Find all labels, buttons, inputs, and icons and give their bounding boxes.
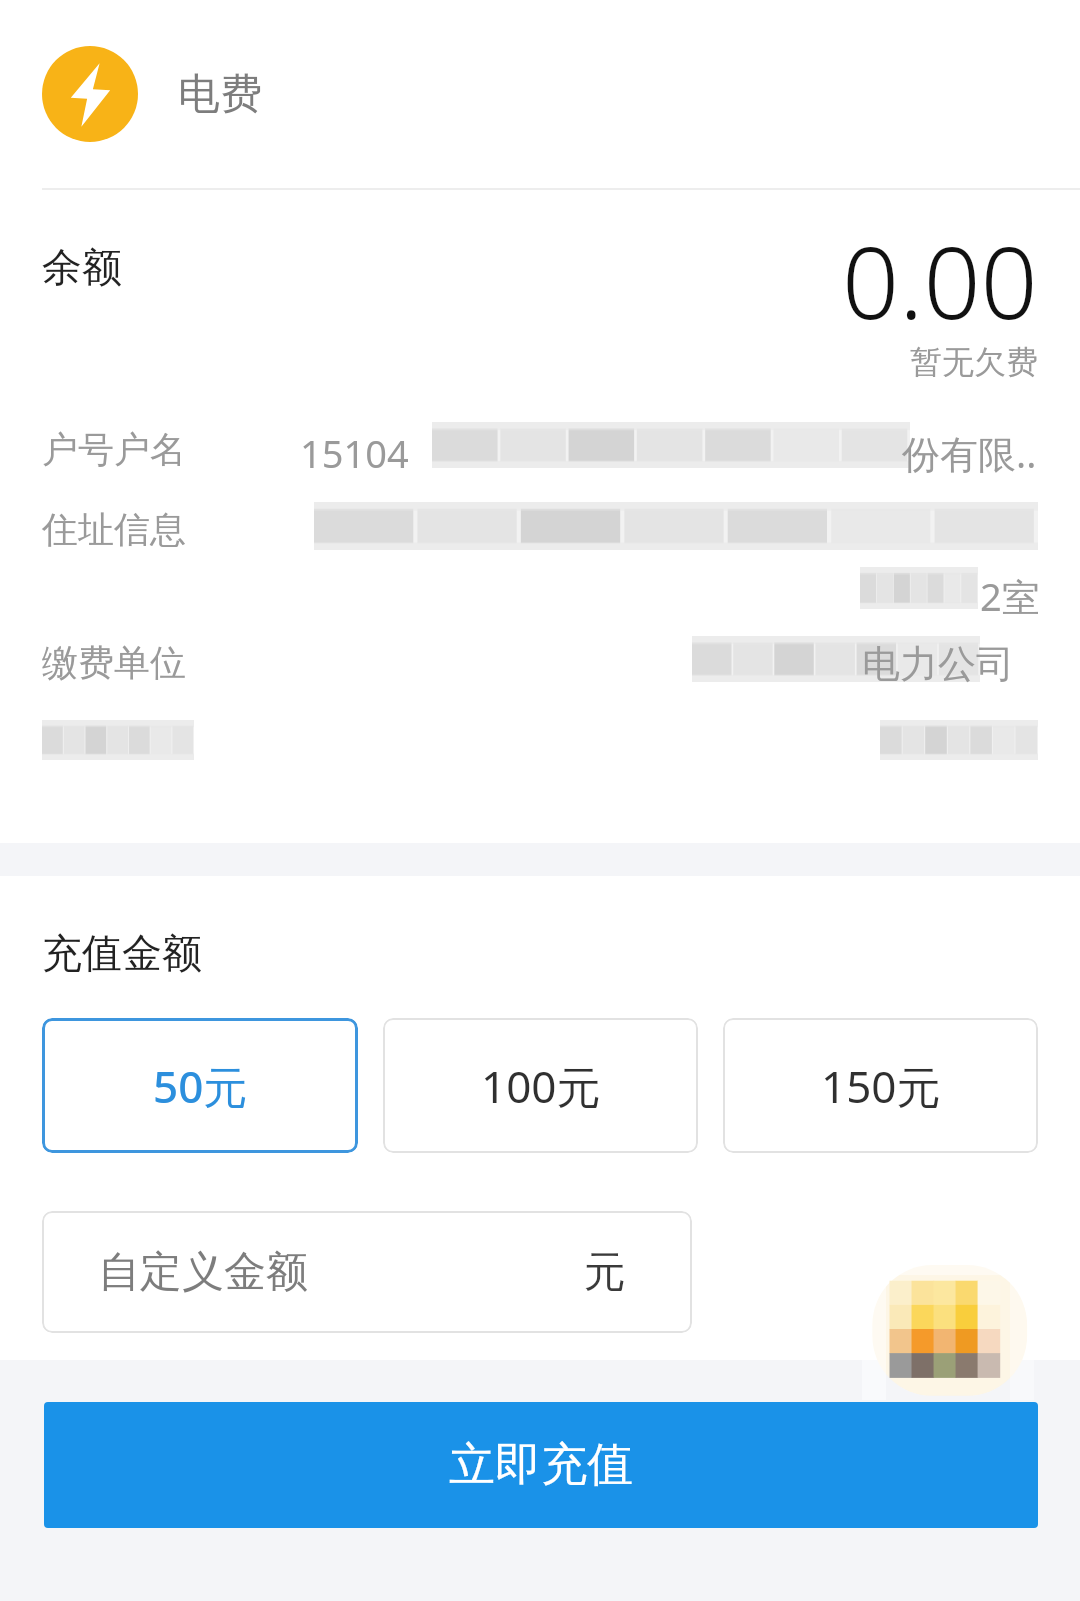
staticText: 暂无欠费 bbox=[910, 342, 1038, 382]
button[interactable]: 150元 bbox=[723, 1018, 1038, 1153]
staticText: 户号户名 bbox=[42, 427, 186, 472]
button[interactable]: 客服 bbox=[862, 1258, 1034, 1400]
staticText: 0.00 bbox=[842, 212, 1038, 348]
staticText: 充值金额 bbox=[42, 928, 202, 978]
staticText: 100元 bbox=[481, 1056, 601, 1116]
button[interactable]: 100元 bbox=[383, 1018, 698, 1153]
staticText: 15104 bbox=[300, 427, 409, 479]
staticText: 50元 bbox=[153, 1056, 248, 1116]
staticText: 立即充值 bbox=[449, 1436, 633, 1494]
staticText: 150元 bbox=[821, 1056, 941, 1116]
button[interactable]: 50元 bbox=[42, 1018, 358, 1153]
staticText: 份有限.. bbox=[902, 427, 1037, 479]
button[interactable]: 自定义金额 bbox=[42, 1211, 692, 1333]
staticText: 住址信息 bbox=[42, 507, 186, 552]
staticText: 缴费单位 bbox=[42, 640, 186, 685]
staticText: 余额 bbox=[42, 242, 122, 292]
staticText: 自定义金额 bbox=[98, 1246, 308, 1299]
staticText: 电力公司 bbox=[862, 640, 1014, 688]
staticText: 2室 bbox=[980, 570, 1040, 622]
staticText: 电费 bbox=[178, 68, 262, 121]
button[interactable]: 立即充值 bbox=[44, 1402, 1038, 1528]
staticText: 元 bbox=[584, 1246, 626, 1299]
